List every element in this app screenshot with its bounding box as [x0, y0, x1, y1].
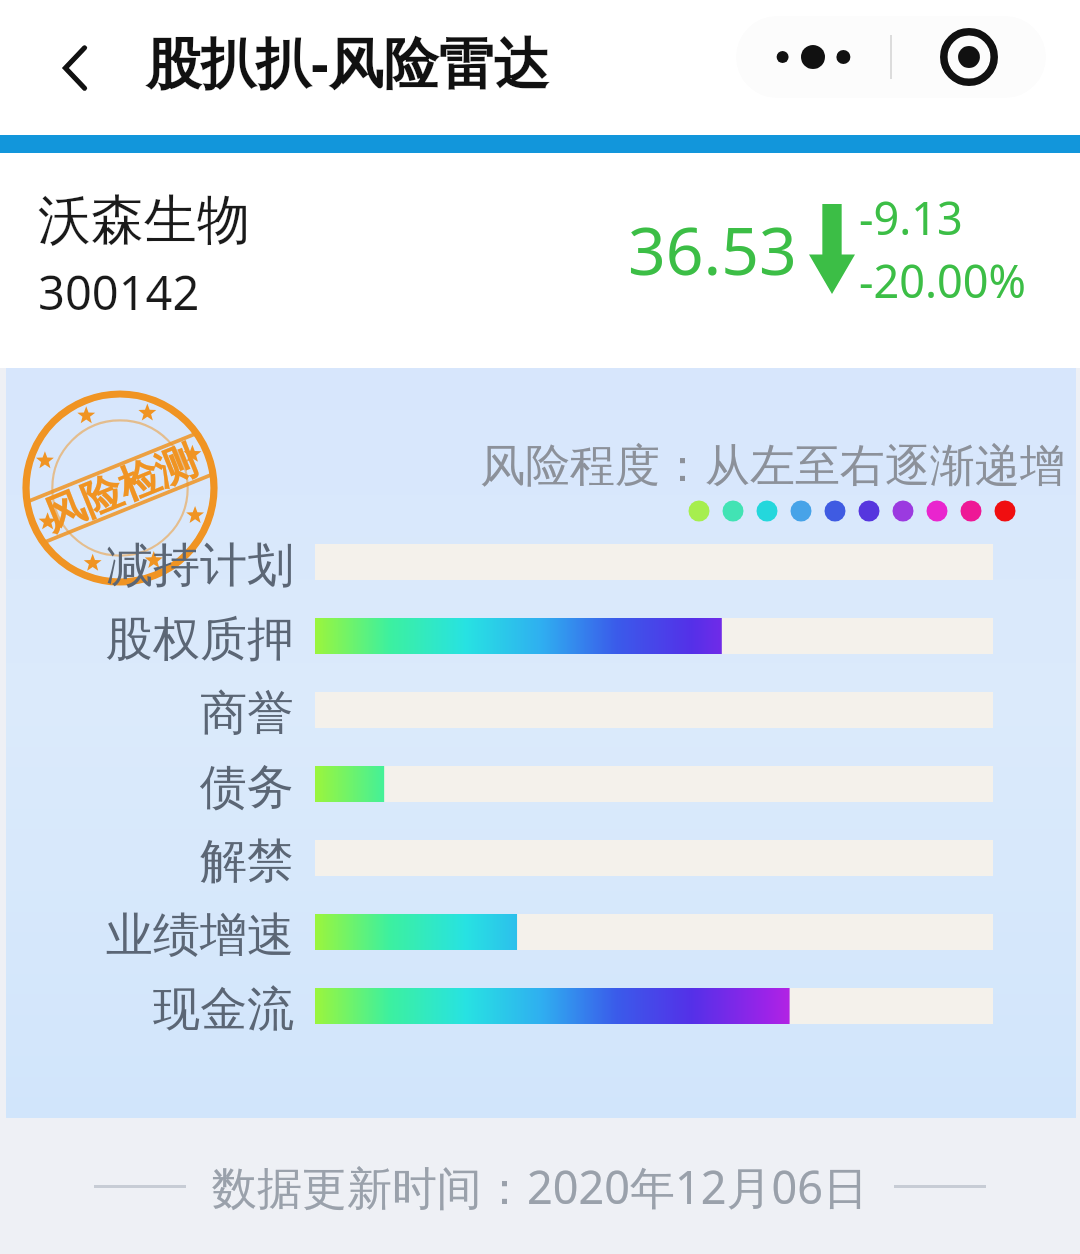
- button[interactable]: Back: [32, 25, 118, 111]
- staticText: 股扒扒-风险雷达: [146, 24, 549, 99]
- button[interactable]: 商誉: [42, 684, 294, 742]
- staticText: 商誉: [200, 684, 294, 742]
- staticText: 沃森生物: [38, 187, 250, 254]
- button[interactable]: 减持计划: [42, 536, 294, 594]
- button[interactable]: 现金流: [42, 980, 294, 1038]
- staticText: 减持计划: [106, 536, 294, 594]
- staticText: 数据更新时间：2020年12月06日: [212, 1156, 868, 1217]
- staticText: -20.00%: [859, 250, 1026, 311]
- button[interactable]: 业绩增速: [42, 906, 294, 964]
- staticText: -9.13: [859, 187, 963, 248]
- button[interactable]: [315, 914, 993, 950]
- staticText: 解禁: [200, 832, 294, 890]
- button[interactable]: [315, 766, 993, 802]
- staticText: 现金流: [153, 980, 294, 1038]
- staticText: 债务: [200, 758, 294, 816]
- staticText: 36.53: [628, 204, 797, 294]
- staticText: 股权质押: [106, 610, 294, 668]
- button[interactable]: [315, 988, 993, 1024]
- button[interactable]: 债务: [42, 758, 294, 816]
- button[interactable]: [315, 618, 993, 654]
- staticText: 风险检测: [36, 435, 204, 541]
- staticText: 业绩增速: [106, 906, 294, 964]
- staticText: 风险程度：从左至右逐渐递增: [480, 438, 1065, 495]
- button[interactable]: Close mini program: [892, 16, 1046, 98]
- button[interactable]: 沃森生物: [0, 153, 1080, 368]
- button[interactable]: More options: [736, 16, 890, 98]
- button[interactable]: 解禁: [42, 832, 294, 890]
- staticText: 300142: [38, 260, 200, 324]
- button[interactable]: 股权质押: [42, 610, 294, 668]
